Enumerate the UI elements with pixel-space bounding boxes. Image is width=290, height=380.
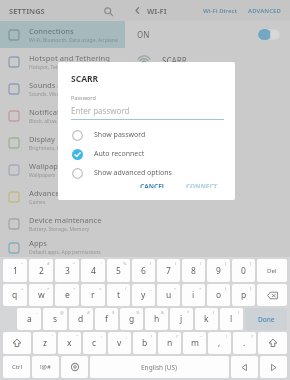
button[interactable]: j bbox=[170, 308, 193, 330]
staticText: j bbox=[180, 313, 183, 325]
button[interactable]: . bbox=[233, 332, 256, 354]
staticText: > bbox=[199, 286, 202, 292]
button[interactable]: CONNECT bbox=[180, 179, 224, 191]
button[interactable]: 5 bbox=[107, 259, 130, 282]
button[interactable]: a bbox=[17, 308, 41, 330]
button[interactable]: 3 bbox=[55, 259, 79, 282]
button[interactable]: Wallpapers and themes bbox=[0, 156, 125, 183]
button[interactable]: 2 bbox=[29, 259, 53, 282]
button[interactable]: Device maintenance bbox=[0, 210, 125, 237]
staticText: Show advanced options bbox=[94, 168, 172, 178]
staticText: : bbox=[101, 334, 103, 340]
button[interactable]: Sounds and vibration bbox=[0, 75, 125, 102]
button[interactable]: Search bbox=[100, 3, 116, 19]
button[interactable]: c bbox=[83, 332, 106, 354]
button[interactable]: SCARR bbox=[125, 47, 290, 73]
button[interactable]: 1 bbox=[3, 259, 27, 282]
staticText: x bbox=[67, 337, 72, 349]
button[interactable]: 6 bbox=[132, 259, 155, 282]
button[interactable]: Auto reconnect bbox=[71, 148, 224, 160]
button[interactable]: Enter password bbox=[71, 105, 224, 120]
button[interactable]: Advanced features bbox=[0, 183, 125, 210]
button[interactable]: d bbox=[69, 308, 93, 330]
staticText: ! bbox=[226, 334, 228, 340]
staticText: * bbox=[187, 310, 190, 316]
button[interactable]: f bbox=[95, 308, 118, 330]
staticText: Sounds and vibration bbox=[29, 80, 106, 90]
staticText: Password bbox=[71, 94, 96, 101]
staticText: } bbox=[250, 286, 252, 292]
button[interactable]: Connections bbox=[0, 21, 125, 48]
button[interactable]: v bbox=[108, 332, 131, 354]
button[interactable]: n bbox=[158, 332, 181, 354]
button[interactable]: Settings bbox=[61, 356, 88, 378]
button[interactable]: Show password bbox=[71, 129, 224, 141]
staticText: t bbox=[117, 289, 121, 301]
staticText: & bbox=[161, 310, 165, 316]
button[interactable]: Wi-Fi Direct bbox=[201, 7, 240, 15]
button[interactable]: Next bbox=[260, 356, 287, 378]
button[interactable]: u bbox=[157, 284, 180, 306]
button[interactable]: x bbox=[58, 332, 81, 354]
button[interactable]: Del bbox=[257, 259, 287, 282]
button[interactable]: Previous bbox=[231, 356, 258, 378]
staticText: Wallpapers bbox=[29, 172, 56, 179]
button[interactable]: g bbox=[120, 308, 143, 330]
button[interactable]: q bbox=[3, 284, 27, 306]
button[interactable]: 7 bbox=[157, 259, 180, 282]
staticText: Brightness, Blue light filter bbox=[29, 145, 92, 152]
button[interactable]: Hotspot and Tethering bbox=[0, 48, 125, 75]
staticText: ) bbox=[175, 261, 177, 267]
button[interactable]: e bbox=[55, 284, 79, 306]
button[interactable]: y bbox=[132, 284, 155, 306]
button[interactable]: Backspace bbox=[257, 284, 287, 306]
button[interactable]: l bbox=[220, 308, 243, 330]
staticText: Games bbox=[29, 199, 46, 206]
button[interactable]: , bbox=[208, 332, 231, 354]
staticText: h bbox=[154, 313, 160, 325]
button[interactable]: s bbox=[43, 308, 67, 330]
button[interactable]: t bbox=[107, 284, 130, 306]
button[interactable]: i bbox=[182, 284, 205, 306]
staticText: ' bbox=[52, 334, 53, 340]
staticText: Show password bbox=[94, 130, 146, 140]
button[interactable]: r bbox=[81, 284, 105, 306]
button[interactable]: 8 bbox=[182, 259, 205, 282]
button[interactable]: w bbox=[29, 284, 53, 306]
staticText: @ bbox=[60, 310, 64, 316]
button[interactable]: o bbox=[207, 284, 230, 306]
button[interactable]: ON bbox=[125, 21, 290, 47]
button[interactable]: !@# bbox=[32, 356, 59, 378]
staticText: a bbox=[27, 313, 32, 325]
button[interactable]: z bbox=[33, 332, 56, 354]
button[interactable]: p bbox=[232, 284, 255, 306]
staticText: Block, allow, prioritize bbox=[29, 118, 81, 125]
staticText: CANCEL bbox=[140, 182, 166, 188]
staticText: Hotspot, Tethering bbox=[29, 64, 73, 71]
button[interactable]: Show advanced options bbox=[71, 167, 224, 179]
button[interactable]: Ctrl bbox=[3, 356, 30, 378]
staticText: = bbox=[99, 286, 102, 292]
button[interactable]: Apps bbox=[0, 237, 125, 257]
button[interactable]: Back bbox=[131, 4, 144, 17]
button[interactable]: 0 bbox=[232, 259, 255, 282]
staticText: k bbox=[204, 313, 209, 325]
button[interactable]: CANCEL bbox=[134, 179, 172, 191]
button[interactable]: 9 bbox=[207, 259, 230, 282]
staticText: WI-FI bbox=[147, 6, 167, 16]
button[interactable]: m bbox=[183, 332, 206, 354]
button[interactable]: Done bbox=[245, 308, 287, 330]
button[interactable]: English (US) bbox=[90, 356, 229, 378]
button[interactable]: Notifications bbox=[0, 102, 125, 129]
button[interactable]: k bbox=[195, 308, 218, 330]
button[interactable]: h bbox=[145, 308, 168, 330]
staticText: f bbox=[105, 313, 108, 325]
button[interactable]: b bbox=[133, 332, 156, 354]
button[interactable]: Shift bbox=[258, 332, 287, 354]
staticText: ] bbox=[250, 261, 252, 267]
button[interactable]: Shift bbox=[3, 332, 31, 354]
button[interactable]: 4 bbox=[81, 259, 105, 282]
button[interactable]: ADVANCED bbox=[246, 7, 283, 15]
button[interactable]: Display bbox=[0, 129, 125, 156]
staticText: Enter password bbox=[71, 105, 130, 116]
